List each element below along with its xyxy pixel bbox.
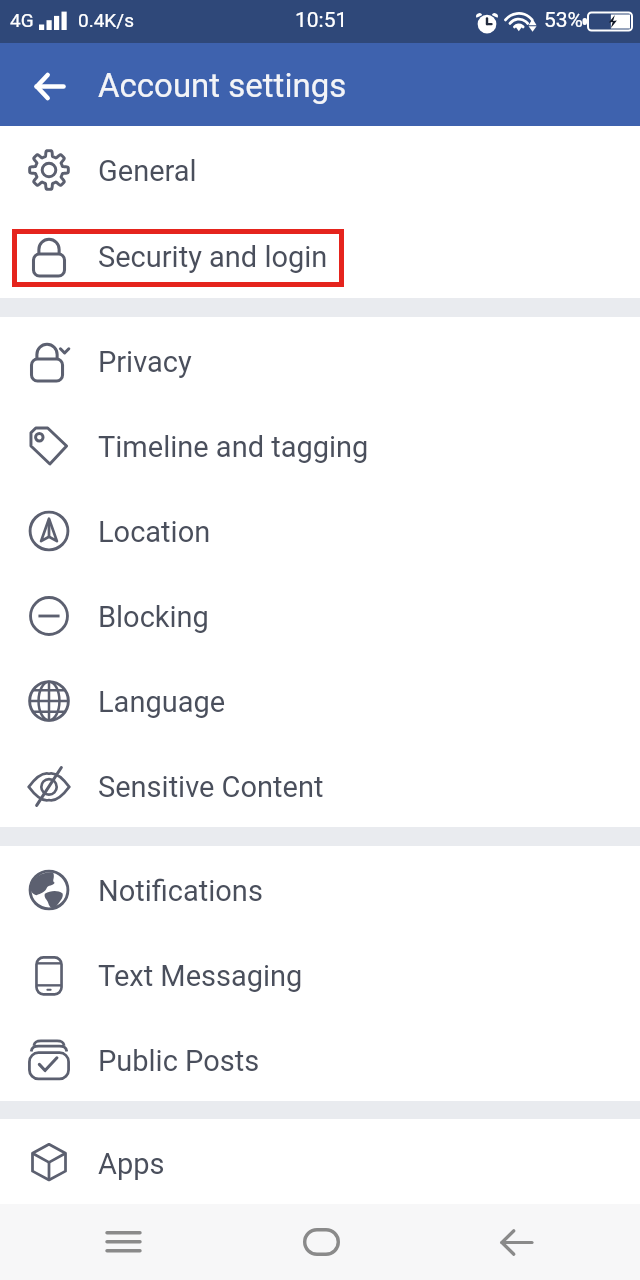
button[interactable]: Language xyxy=(0,657,640,742)
staticText: Language xyxy=(98,685,226,719)
button[interactable]: Back xyxy=(0,43,98,126)
staticText: Text Messaging xyxy=(98,959,303,993)
staticText: 53% xyxy=(544,8,583,33)
button[interactable]: Home xyxy=(281,1204,361,1280)
button[interactable]: Blocking xyxy=(0,572,640,657)
button[interactable]: Privacy xyxy=(0,317,640,402)
staticText: Apps xyxy=(98,1147,165,1181)
staticText: Timeline and tagging xyxy=(98,430,369,464)
staticText: 10:51 xyxy=(295,8,348,33)
staticText: 0.4K/s xyxy=(78,9,134,31)
staticText: General xyxy=(98,154,197,188)
staticText: Location xyxy=(98,515,211,549)
staticText: Security and login xyxy=(98,240,328,274)
staticText: Privacy xyxy=(98,345,192,379)
button[interactable]: Apps xyxy=(0,1119,640,1204)
button[interactable]: Text Messaging xyxy=(0,931,640,1016)
staticText: Notifications xyxy=(98,874,263,908)
staticText: Account settings xyxy=(98,66,347,105)
button[interactable]: Security and login xyxy=(0,212,640,298)
button[interactable]: Notifications xyxy=(0,846,640,931)
button[interactable]: Timeline and tagging xyxy=(0,402,640,487)
button[interactable]: Sensitive Content xyxy=(0,742,640,827)
button[interactable]: Recent apps xyxy=(84,1204,163,1280)
button[interactable]: Public Posts xyxy=(0,1016,640,1101)
button[interactable]: Location xyxy=(0,487,640,572)
button[interactable]: Back xyxy=(476,1204,556,1280)
staticText: Blocking xyxy=(98,600,209,634)
staticText: 4G xyxy=(10,9,34,31)
button[interactable]: General xyxy=(0,126,640,212)
staticText: Public Posts xyxy=(98,1044,260,1078)
staticText: Sensitive Content xyxy=(98,770,324,804)
